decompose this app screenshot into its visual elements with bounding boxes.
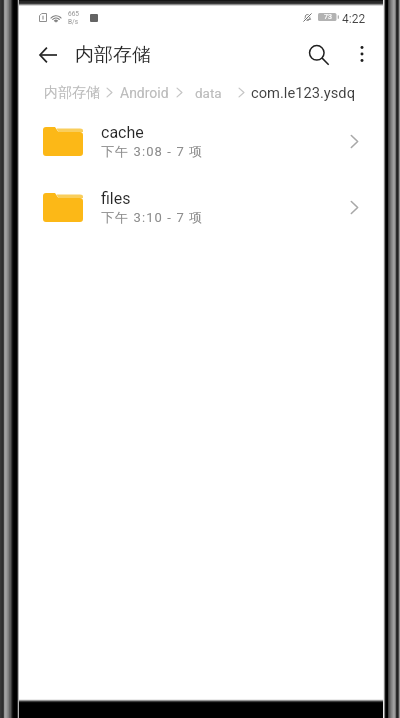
staticText: 4:22 [342, 12, 366, 26]
staticText: files [101, 189, 131, 208]
button[interactable]: More options [341, 30, 383, 78]
button[interactable]: com.le123.ysdq [251, 77, 355, 108]
staticText: 下午 3:10 - 7 项 [101, 209, 204, 225]
button[interactable]: cache [19, 108, 383, 174]
staticText: 73 [324, 13, 332, 21]
button[interactable]: Back [28, 31, 68, 79]
staticText: 665 [68, 10, 79, 18]
button[interactable]: data [195, 77, 222, 108]
staticText: 内部存储 [44, 84, 100, 102]
button[interactable]: files [19, 174, 383, 240]
staticText: com.le123.ysdq [251, 84, 355, 101]
staticText: data [195, 85, 222, 101]
staticText: 内部存储 [75, 43, 151, 67]
button[interactable]: Android [120, 77, 169, 108]
staticText: Android [120, 85, 169, 101]
staticText: cache [101, 123, 144, 142]
button[interactable]: Search [296, 31, 342, 79]
staticText: B/s [68, 18, 79, 26]
button[interactable]: 内部存储 [44, 77, 100, 108]
staticText: 下午 3:08 - 7 项 [101, 143, 204, 159]
